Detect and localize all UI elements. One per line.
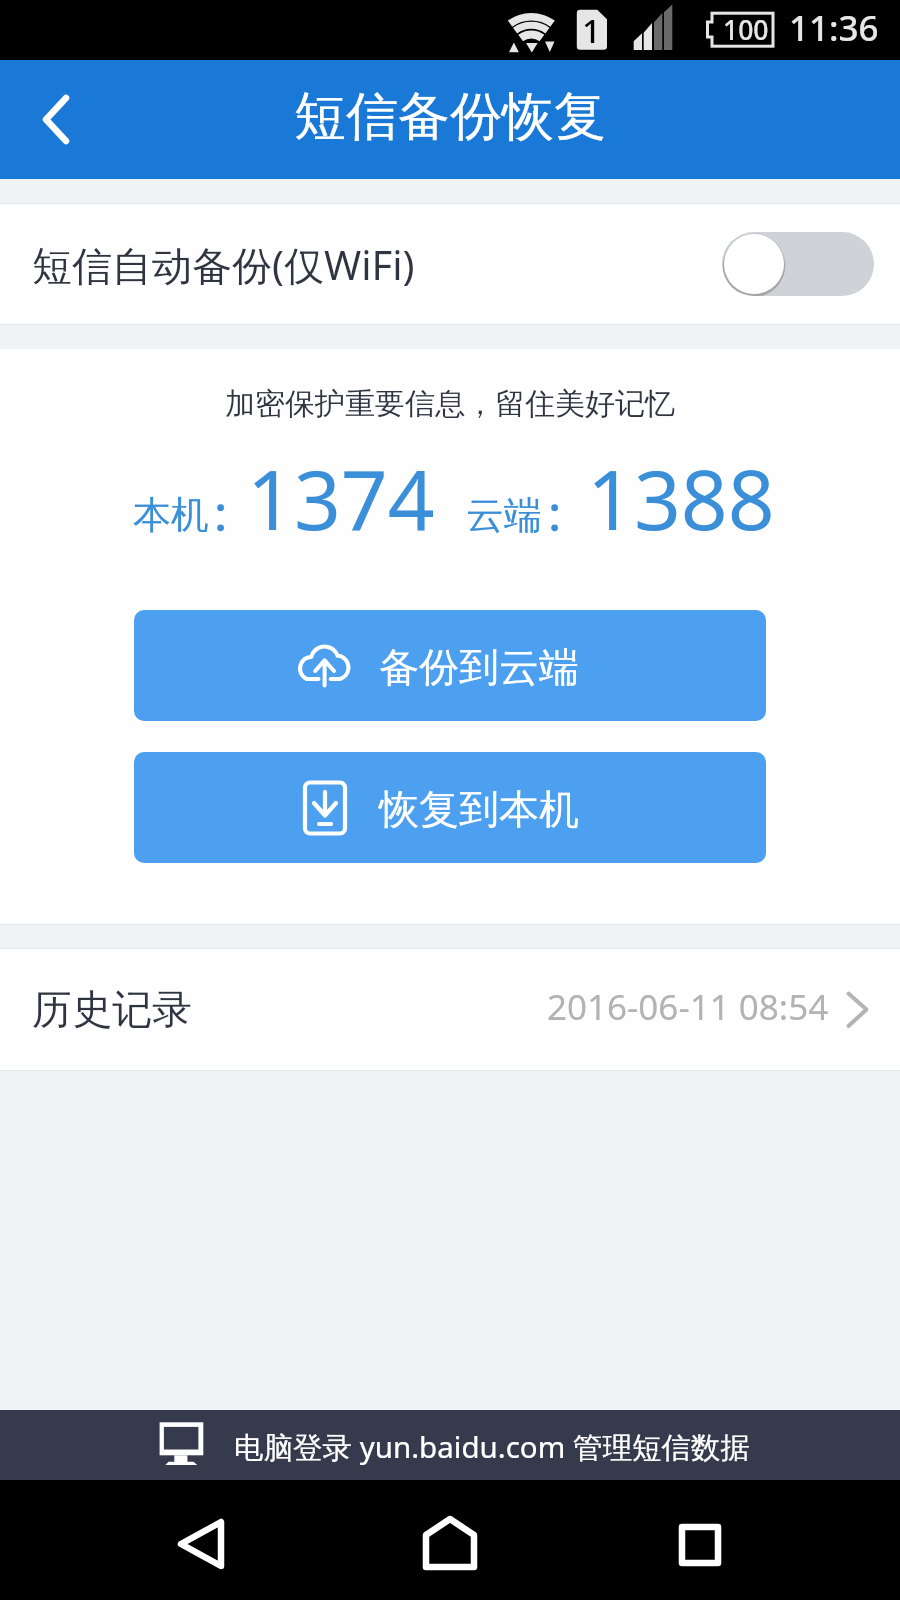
staticText: 历史记录 [32, 984, 192, 1034]
staticText: 短信备份恢复 [294, 84, 606, 150]
button[interactable]: 短信自动备份(仅WiFi) [0, 204, 900, 324]
button[interactable]: Home [390, 1480, 510, 1600]
button[interactable]: 备份到云端 [134, 610, 766, 721]
button[interactable]: 恢复到本机 [134, 752, 766, 863]
staticText: 1 [582, 8, 601, 53]
staticText: 电脑登录 yun.baidu.com 管理短信数据 [234, 1426, 750, 1466]
staticText: 2016-06-11 08:54 [547, 983, 829, 1031]
staticText: 11:36 [789, 4, 879, 52]
button[interactable]: Back [0, 60, 110, 179]
button[interactable]: 电脑登录 yun.baidu.com 管理短信数据 [0, 1410, 900, 1480]
button[interactable]: Back [140, 1480, 260, 1600]
staticText: 备份到云端 [379, 642, 579, 692]
staticText: 1388 [587, 442, 775, 554]
staticText: 加密保护重要信息，留住美好记忆 [225, 385, 675, 423]
staticText: 恢复到本机 [379, 784, 579, 834]
staticText: 短信自动备份(仅WiFi) [32, 237, 415, 292]
button[interactable]: 历史记录 [0, 949, 900, 1070]
staticText: 1374 [247, 442, 435, 554]
staticText: 本机 [133, 491, 209, 539]
button[interactable]: Recents [640, 1480, 760, 1600]
staticText: 100 [723, 12, 769, 48]
staticText: 云端 [466, 491, 542, 539]
